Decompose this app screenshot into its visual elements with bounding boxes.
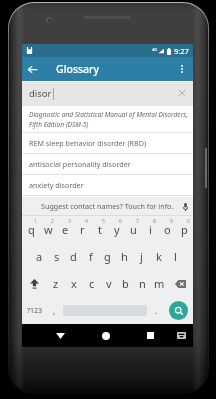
- staticText: x: [71, 276, 77, 291]
- button[interactable]: 4: [74, 216, 91, 243]
- staticText: t: [98, 222, 102, 237]
- button[interactable]: Diagnostic and Statistical Manual of Men…: [22, 106, 193, 132]
- staticText: h: [121, 249, 128, 264]
- staticText: disor: [29, 87, 52, 100]
- button[interactable]: 2: [40, 216, 57, 243]
- button[interactable]: d: [65, 243, 82, 270]
- button[interactable]: Switch keyboard: [169, 324, 193, 347]
- button[interactable]: n: [134, 270, 151, 297]
- button[interactable]: ?123: [22, 297, 47, 324]
- staticText: 9:27: [174, 46, 189, 56]
- staticText: f: [89, 249, 93, 264]
- button[interactable]: g: [99, 243, 116, 270]
- button[interactable]: v: [100, 270, 117, 297]
- staticText: antisocial personality disorder: [29, 159, 131, 169]
- button[interactable]: 9: [159, 216, 176, 243]
- button[interactable]: 6: [108, 216, 125, 243]
- button[interactable]: anxiety disorder: [22, 175, 193, 195]
- staticText: REM sleep behavior disorder (RBD): [29, 138, 147, 148]
- button[interactable]: m: [151, 270, 168, 297]
- staticText: e: [62, 222, 69, 237]
- staticText: p: [181, 222, 188, 237]
- button[interactable]: x: [65, 270, 83, 297]
- staticText: Glossary: [56, 62, 100, 76]
- staticText: j: [140, 249, 143, 264]
- staticText: u: [130, 222, 137, 237]
- button[interactable]: Shift: [22, 270, 47, 297]
- button[interactable]: 3: [57, 216, 74, 243]
- button[interactable]: REM sleep behavior disorder (RBD): [22, 133, 193, 153]
- button[interactable]: Recent apps: [138, 324, 162, 347]
- button[interactable]: 5: [91, 216, 108, 243]
- button[interactable]: k: [150, 243, 167, 270]
- button[interactable]: More options: [171, 57, 193, 81]
- button[interactable]: 7: [125, 216, 142, 243]
- button[interactable]: a: [31, 243, 48, 270]
- staticText: 9: [170, 218, 173, 225]
- staticText: s: [54, 249, 60, 264]
- button[interactable]: Voice input: [177, 197, 193, 216]
- staticText: 4G: [152, 47, 158, 52]
- staticText: d: [70, 249, 77, 264]
- button[interactable]: Home: [94, 324, 118, 347]
- staticText: 3: [68, 218, 71, 225]
- button[interactable]: h: [116, 243, 133, 270]
- staticText: z: [53, 276, 59, 291]
- staticText: a: [36, 249, 43, 264]
- staticText: r: [80, 222, 85, 237]
- staticText: q: [28, 222, 35, 237]
- staticText: i: [149, 222, 152, 237]
- button[interactable]: .: [149, 297, 163, 324]
- staticText: Diagnostic and Statistical Manual of Men…: [29, 110, 188, 129]
- staticText: 2: [51, 218, 54, 225]
- staticText: 4: [85, 218, 88, 225]
- button[interactable]: Back: [48, 324, 72, 347]
- button[interactable]: antisocial personality disorder: [22, 154, 193, 174]
- staticText: b: [122, 276, 129, 291]
- button[interactable]: s: [48, 243, 65, 270]
- button[interactable]: 0: [176, 216, 193, 243]
- button[interactable]: ,: [47, 297, 61, 324]
- button[interactable]: b: [117, 270, 134, 297]
- staticText: m: [154, 276, 165, 291]
- button[interactable]: 8: [142, 216, 159, 243]
- button[interactable]: Navigate up: [22, 57, 43, 81]
- button[interactable]: j: [133, 243, 150, 270]
- staticText: n: [139, 276, 146, 291]
- staticText: y: [114, 222, 120, 237]
- button[interactable]: z: [47, 270, 65, 297]
- staticText: Suggest contact names? Touch for info.: [41, 201, 174, 211]
- staticText: 1: [34, 218, 37, 225]
- staticText: g: [104, 249, 111, 264]
- staticText: o: [164, 222, 171, 237]
- staticText: l: [174, 249, 177, 264]
- staticText: w: [44, 222, 53, 237]
- staticText: k: [156, 249, 162, 264]
- button[interactable]: Search: [169, 301, 188, 320]
- button[interactable]: f: [82, 243, 99, 270]
- button[interactable]: 1: [22, 216, 40, 243]
- staticText: 6: [119, 218, 122, 225]
- staticText: .: [155, 305, 158, 316]
- staticText: ,: [53, 305, 56, 316]
- staticText: 0: [187, 218, 190, 225]
- staticText: anxiety disorder: [29, 180, 84, 190]
- button[interactable]: c: [83, 270, 100, 297]
- staticText: ?123: [27, 306, 43, 316]
- staticText: 7: [136, 218, 139, 225]
- button[interactable]: Backspace: [168, 270, 193, 297]
- button[interactable]: l: [167, 243, 184, 270]
- staticText: v: [106, 276, 112, 291]
- staticText: 8: [153, 218, 156, 225]
- staticText: c: [89, 276, 95, 291]
- staticText: 5: [102, 218, 105, 225]
